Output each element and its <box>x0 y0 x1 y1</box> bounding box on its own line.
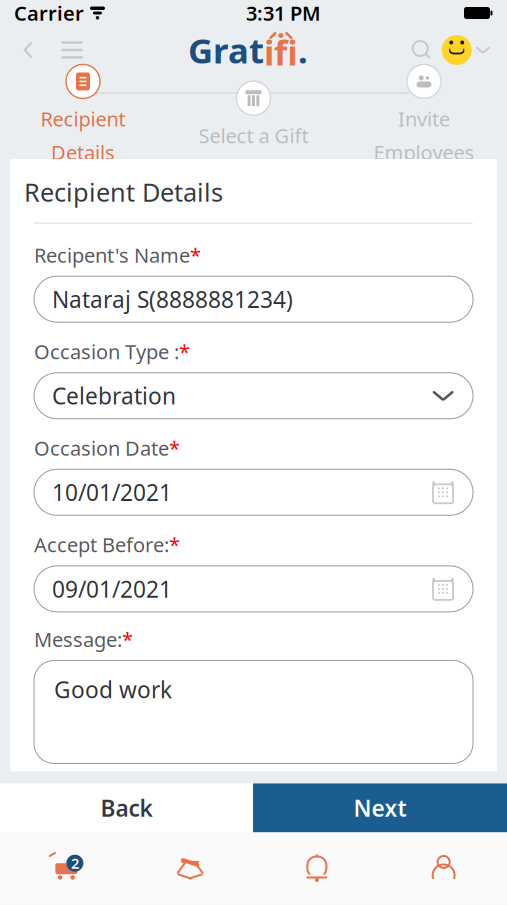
staticText: 09/01/2021 <box>52 574 172 604</box>
button[interactable]: Favorites <box>127 838 254 898</box>
button[interactable]: Notifications <box>253 838 380 898</box>
staticText: Celebration <box>52 381 176 411</box>
staticText: Invite <box>398 105 450 132</box>
staticText: Recipent's Name <box>34 242 190 268</box>
staticText: Occasion Date <box>34 435 169 461</box>
staticText: * <box>179 338 190 365</box>
button[interactable]: Cart <box>0 838 127 898</box>
staticText: Details <box>51 139 115 166</box>
staticText: * <box>169 435 180 461</box>
staticText: Nataraj S(8888881234) <box>52 284 293 314</box>
button[interactable]: Next <box>253 783 507 832</box>
staticText: Next <box>353 793 406 823</box>
staticText: Accept Before: <box>34 531 169 558</box>
staticText: Good work <box>54 674 172 704</box>
staticText: 2 <box>71 853 79 873</box>
staticText: Occasion Type : <box>34 338 179 365</box>
staticText: Employees <box>373 139 474 166</box>
staticText: Grat <box>188 27 264 73</box>
staticText: Select a Gift <box>198 122 308 149</box>
staticText: Back <box>100 793 152 823</box>
staticText: 10/01/2021 <box>52 477 172 507</box>
button[interactable]: Profile <box>442 28 501 72</box>
staticText: 3:31 PM <box>246 0 321 26</box>
button[interactable]: Back <box>0 783 253 832</box>
staticText: ifi <box>264 29 298 75</box>
button[interactable]: Back <box>6 28 50 72</box>
button[interactable]: Search <box>402 28 442 72</box>
staticText: Message: <box>34 626 122 652</box>
button[interactable]: Menu <box>50 28 94 72</box>
staticText: * <box>190 242 201 268</box>
staticText: Recipient Details <box>24 175 223 209</box>
staticText: * <box>122 626 133 652</box>
staticText: Carrier <box>14 0 84 26</box>
staticText: * <box>169 531 180 558</box>
staticText: . <box>298 27 308 73</box>
button[interactable]: Account <box>380 838 507 898</box>
staticText: Recipient <box>40 105 125 132</box>
